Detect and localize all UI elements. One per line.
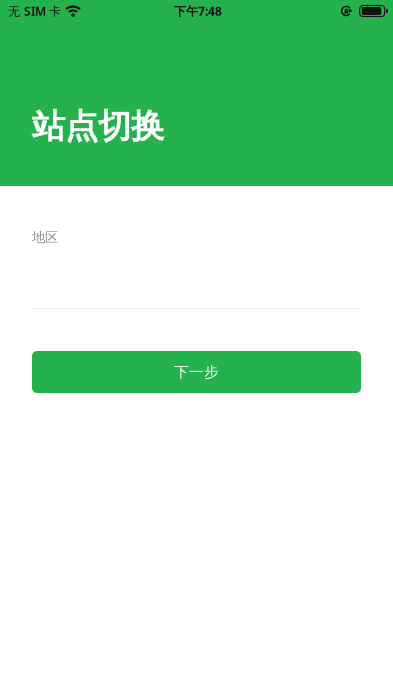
staticText: 无 SIM 卡 — [8, 3, 61, 19]
staticText: 下一步 — [174, 363, 219, 381]
staticText: 地区 — [32, 229, 58, 245]
staticText: 站点切换 — [32, 106, 164, 147]
staticText: 下午7:48 — [174, 3, 222, 19]
button[interactable]: 下一步 — [32, 351, 361, 393]
